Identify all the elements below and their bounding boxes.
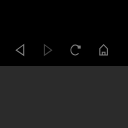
button[interactable]: Refresh [62,37,88,63]
button[interactable]: Back [7,37,33,63]
button[interactable]: Home [91,37,117,63]
button[interactable]: Forward [35,37,61,63]
